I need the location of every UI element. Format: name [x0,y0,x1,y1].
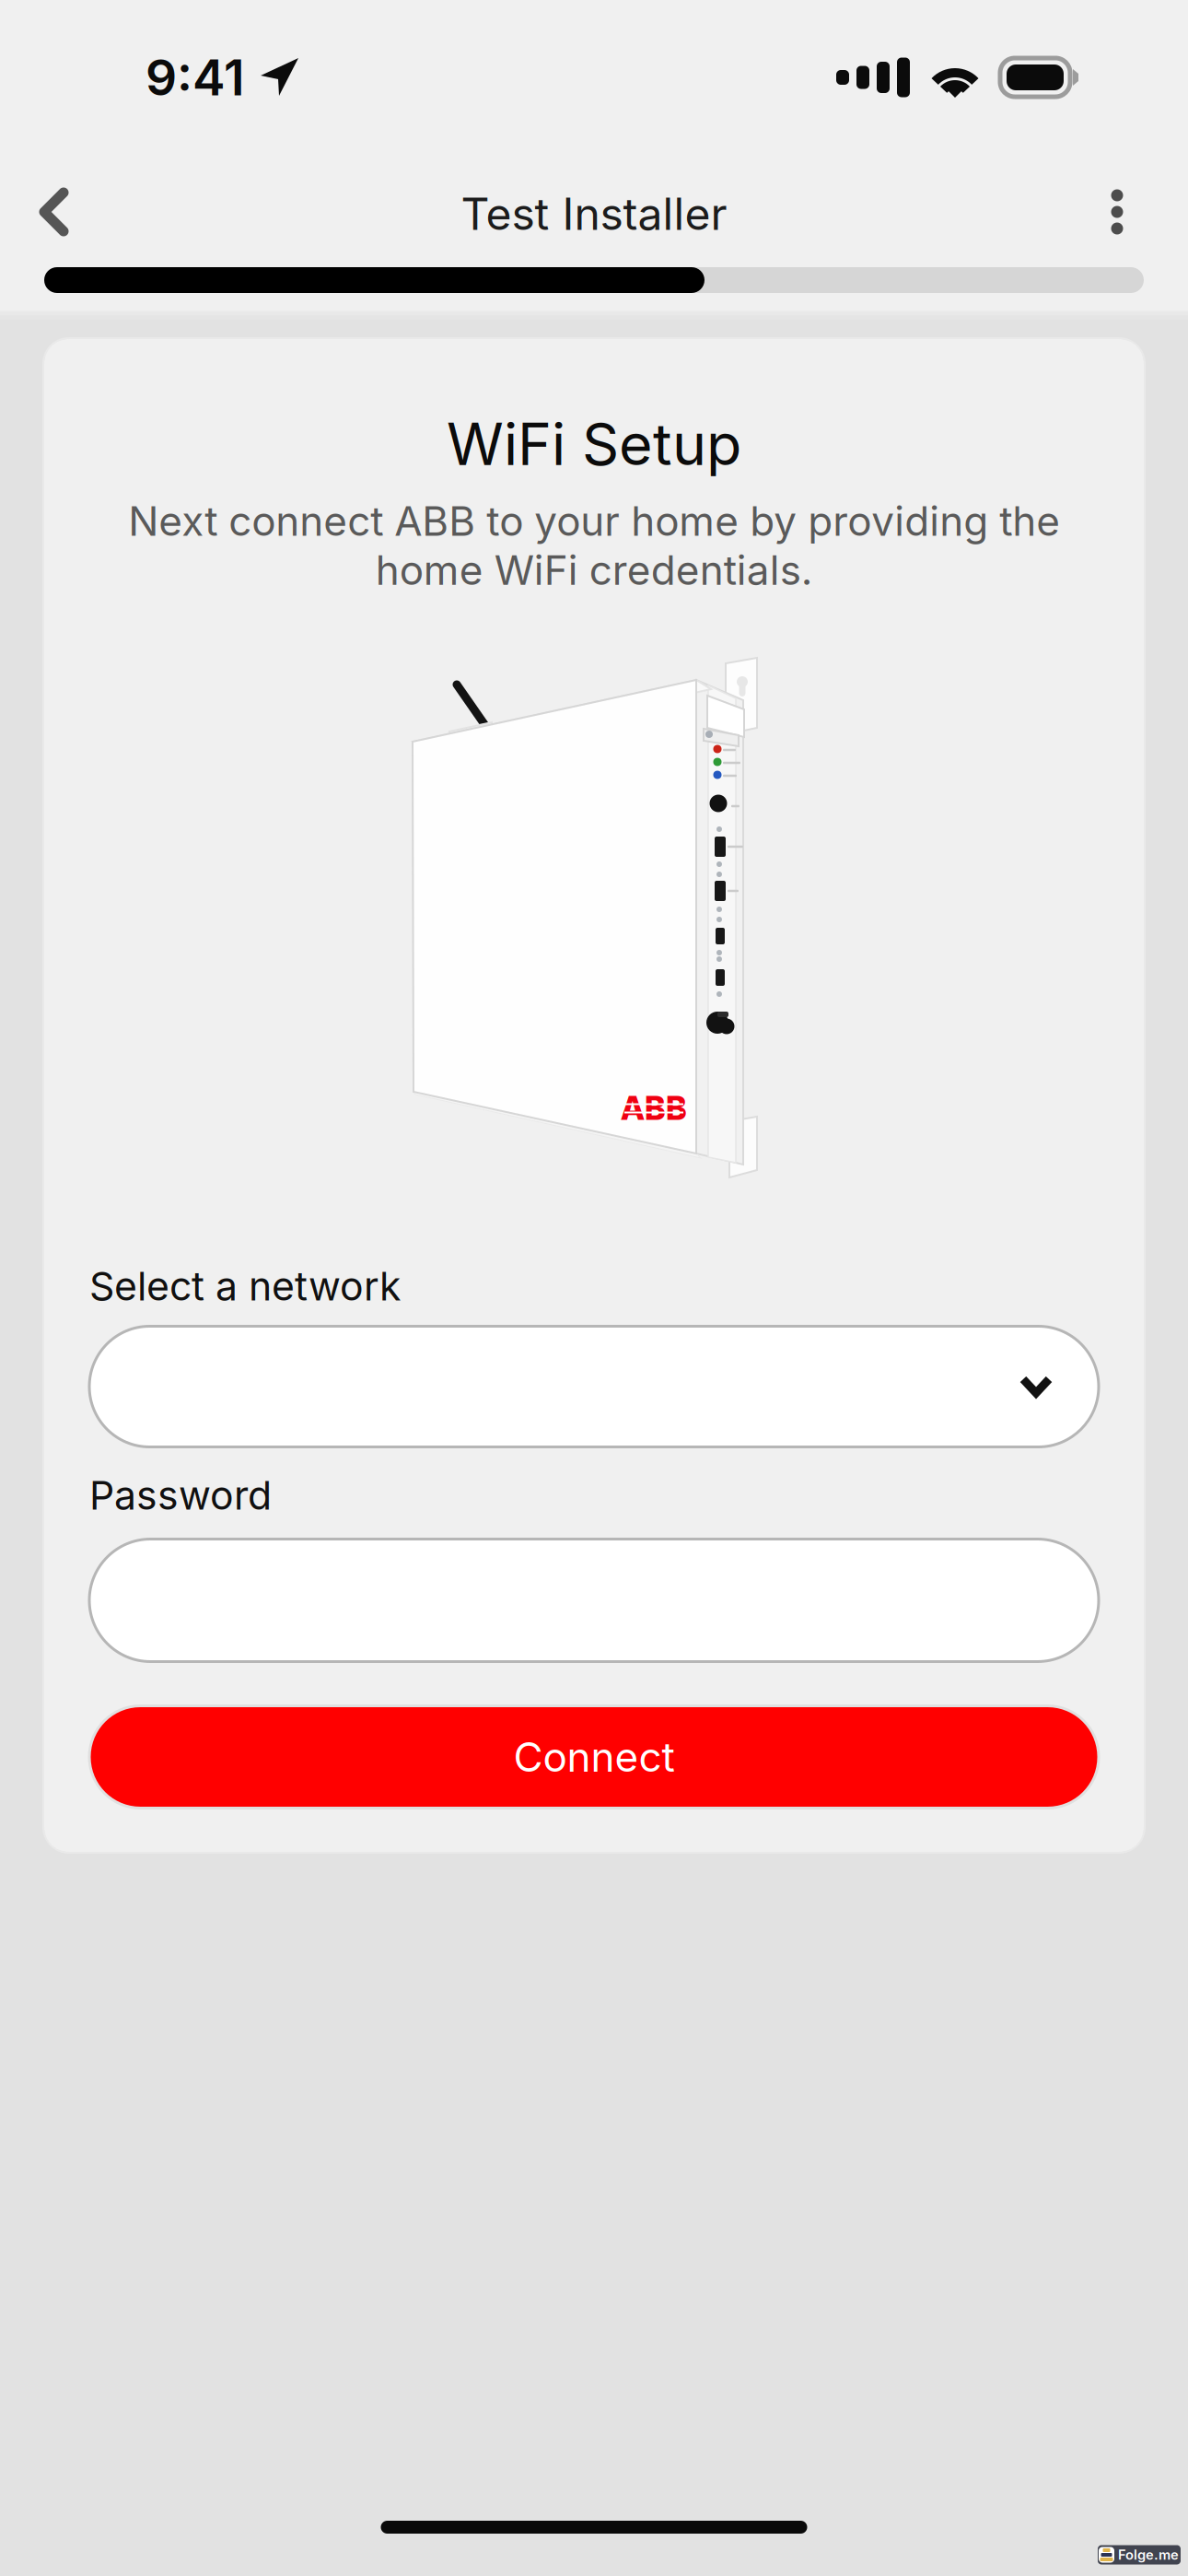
staticText: Test Installer [461,187,727,241]
button[interactable]: Connect [89,1706,1099,1808]
button[interactable]: Select a network [89,1326,1099,1447]
staticText: WiFi Setup [447,409,741,479]
staticText: Select a network [89,1262,401,1310]
button[interactable]: More options [1062,157,1172,267]
staticText: ABB [621,1089,687,1128]
button[interactable]: Back [0,157,109,267]
button[interactable]: Password [89,1539,1099,1662]
staticText: 9:41 [146,48,245,107]
staticText: Next connect ABB to your home by providi… [128,496,1060,595]
staticText: Connect [513,1732,675,1781]
staticText: Folge.me [1118,2547,1179,2563]
staticText: Password [89,1472,272,1519]
